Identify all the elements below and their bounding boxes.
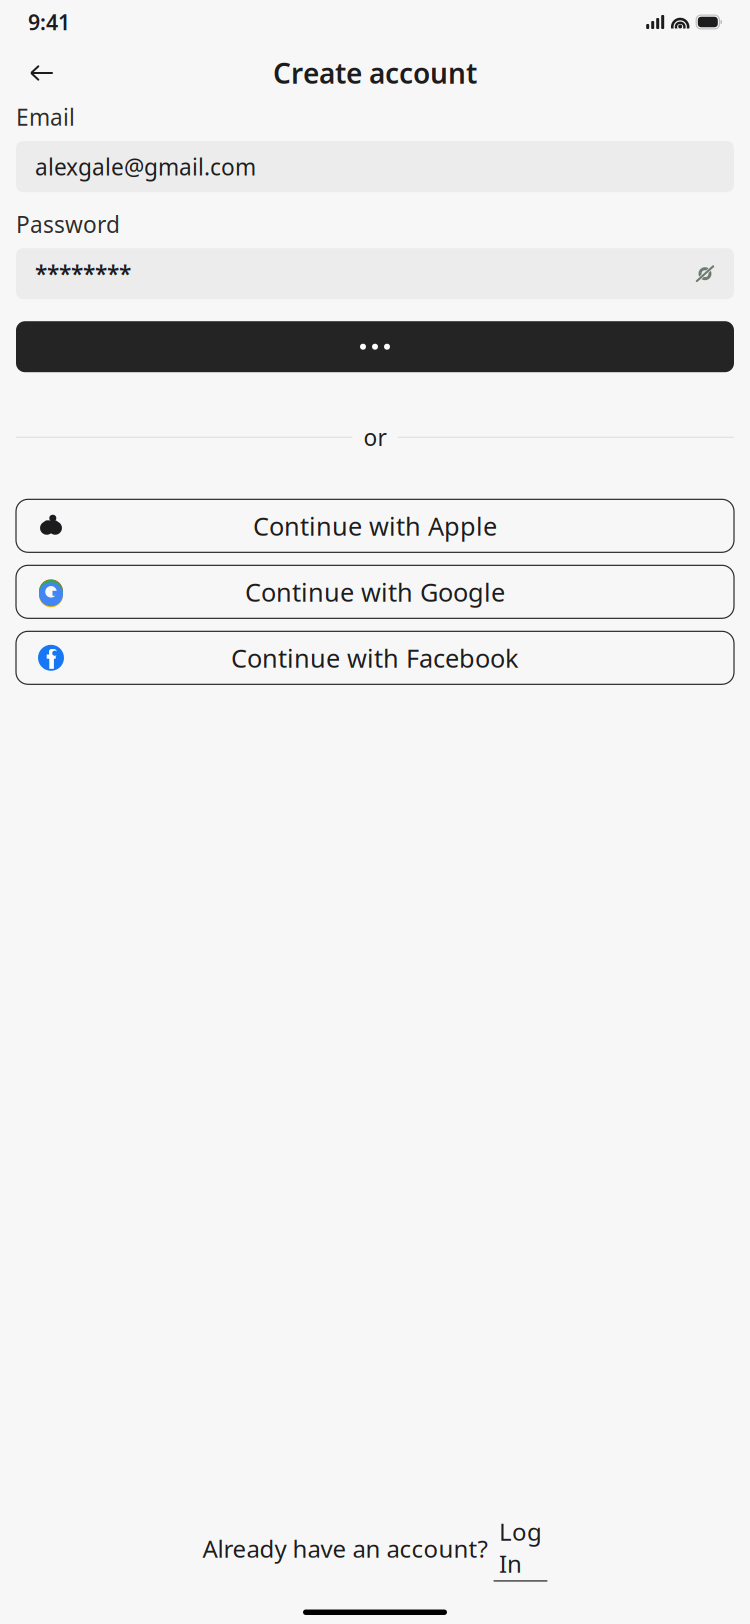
button[interactable]: Continue with Google: [16, 565, 734, 618]
staticText: Continue with Facebook: [231, 641, 519, 675]
staticText: ********: [35, 259, 131, 289]
button[interactable]: Back: [20, 51, 64, 95]
staticText: alexgale@gmail.com: [35, 152, 256, 182]
staticText: Log In: [499, 1516, 542, 1579]
button[interactable]: Show password: [687, 256, 723, 292]
staticText: 9:41: [28, 8, 70, 36]
staticText: or: [363, 422, 386, 452]
staticText: Continue with Apple: [253, 509, 497, 543]
staticText: Continue with Google: [245, 575, 505, 609]
staticText: Email: [16, 102, 75, 132]
button[interactable]: Already have an account?: [192, 1510, 557, 1587]
staticText: Already have an account?: [202, 1533, 487, 1564]
button[interactable]: Continue with Facebook: [16, 631, 734, 684]
staticText: Create account: [273, 54, 477, 92]
button[interactable]: Create account: [16, 321, 734, 372]
button[interactable]: Continue with Apple: [16, 499, 734, 552]
staticText: Password: [16, 209, 120, 239]
